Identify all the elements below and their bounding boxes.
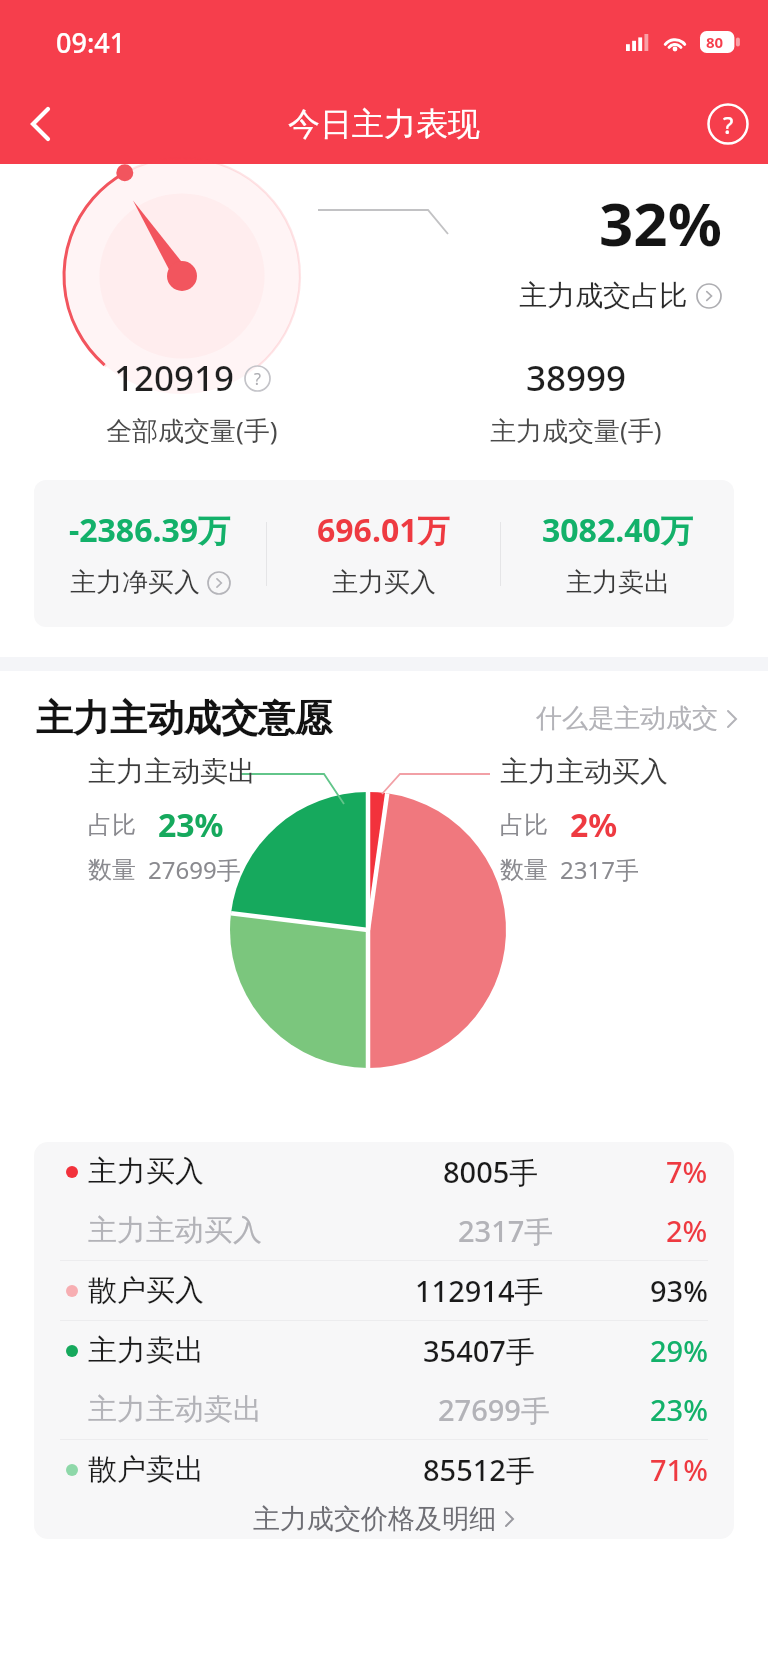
button[interactable]: 主力主动买入 xyxy=(34,1201,734,1260)
staticText: 85512手 xyxy=(423,1450,535,1490)
staticText: 主力成交量(手) xyxy=(490,412,662,448)
staticText: 今日主力表现 xyxy=(288,104,480,144)
staticText: 27699手 xyxy=(148,853,241,886)
staticText: 32% xyxy=(599,182,722,264)
staticText: 散户卖出 xyxy=(88,1451,204,1488)
button[interactable]: 主力卖出 xyxy=(34,1321,734,1380)
staticText: 35407手 xyxy=(423,1331,535,1371)
staticText: 数量 xyxy=(500,855,548,885)
button[interactable]: 散户买入 xyxy=(34,1261,734,1320)
staticText: 93% xyxy=(650,1271,708,1310)
button[interactable]: 散户卖出 xyxy=(34,1440,734,1499)
button[interactable]: Back xyxy=(0,84,80,164)
staticText: 27699手 xyxy=(438,1390,550,1430)
staticText: 全部成交量(手) xyxy=(106,412,278,448)
staticText: 主力买入 xyxy=(88,1153,204,1190)
staticText: 什么是主动成交 xyxy=(536,702,718,735)
staticText: 38999 xyxy=(526,354,627,402)
button[interactable]: 主力成交价格及明细 xyxy=(34,1499,734,1539)
staticText: 占比 xyxy=(500,810,548,840)
staticText: 8005手 xyxy=(443,1152,539,1192)
button[interactable]: 什么是主动成交 xyxy=(536,702,738,735)
staticText: 主力成交占比 xyxy=(519,278,687,313)
button[interactable]: Help xyxy=(688,84,768,164)
button[interactable]: 主力主动卖出 xyxy=(34,1380,734,1439)
staticText: 2317手 xyxy=(458,1211,554,1251)
staticText: 2% xyxy=(570,803,618,847)
staticText: 主力卖出 xyxy=(566,566,670,599)
button[interactable]: -2386.39万 xyxy=(34,508,266,599)
staticText: 112914手 xyxy=(415,1271,544,1311)
staticText: 主力主动买入 xyxy=(500,754,668,789)
staticText: 7% xyxy=(666,1152,708,1191)
staticText: 数量 xyxy=(88,855,136,885)
staticText: 主力主动卖出 xyxy=(88,754,256,789)
staticText: 主力买入 xyxy=(332,566,436,599)
staticText: ? xyxy=(723,109,734,140)
staticText: 23% xyxy=(158,803,224,847)
staticText: 23% xyxy=(650,1390,708,1429)
staticText: 主力主动卖出 xyxy=(88,1391,262,1428)
staticText: 占比 xyxy=(88,810,136,840)
button[interactable]: Info xyxy=(244,365,271,392)
staticText: 主力净买入 xyxy=(70,566,200,599)
staticText: 主力卖出 xyxy=(88,1332,204,1369)
staticText: 696.01万 xyxy=(317,508,450,552)
staticText: 71% xyxy=(650,1450,708,1489)
staticText: 80 xyxy=(706,32,724,52)
staticText: 散户买入 xyxy=(88,1272,204,1309)
staticText: 主力主动成交意愿 xyxy=(36,695,332,742)
staticText: 主力主动买入 xyxy=(88,1212,262,1249)
staticText: -2386.39万 xyxy=(69,508,231,552)
staticText: 09:41 xyxy=(56,24,126,61)
staticText: 2% xyxy=(666,1211,708,1250)
staticText: 3082.40万 xyxy=(542,508,693,552)
staticText: 29% xyxy=(650,1331,708,1370)
staticText: 主力成交价格及明细 xyxy=(253,1502,496,1536)
staticText: 120919 xyxy=(114,354,235,402)
button[interactable]: 主力成交占比 xyxy=(519,278,722,313)
staticText: 2317手 xyxy=(560,853,639,886)
staticText: ? xyxy=(254,368,261,390)
button[interactable]: 主力买入 xyxy=(34,1142,734,1201)
